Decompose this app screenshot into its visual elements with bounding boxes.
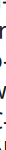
staticText: Hello World This Is A Test Of Wrapping T… [0, 0, 6, 150]
